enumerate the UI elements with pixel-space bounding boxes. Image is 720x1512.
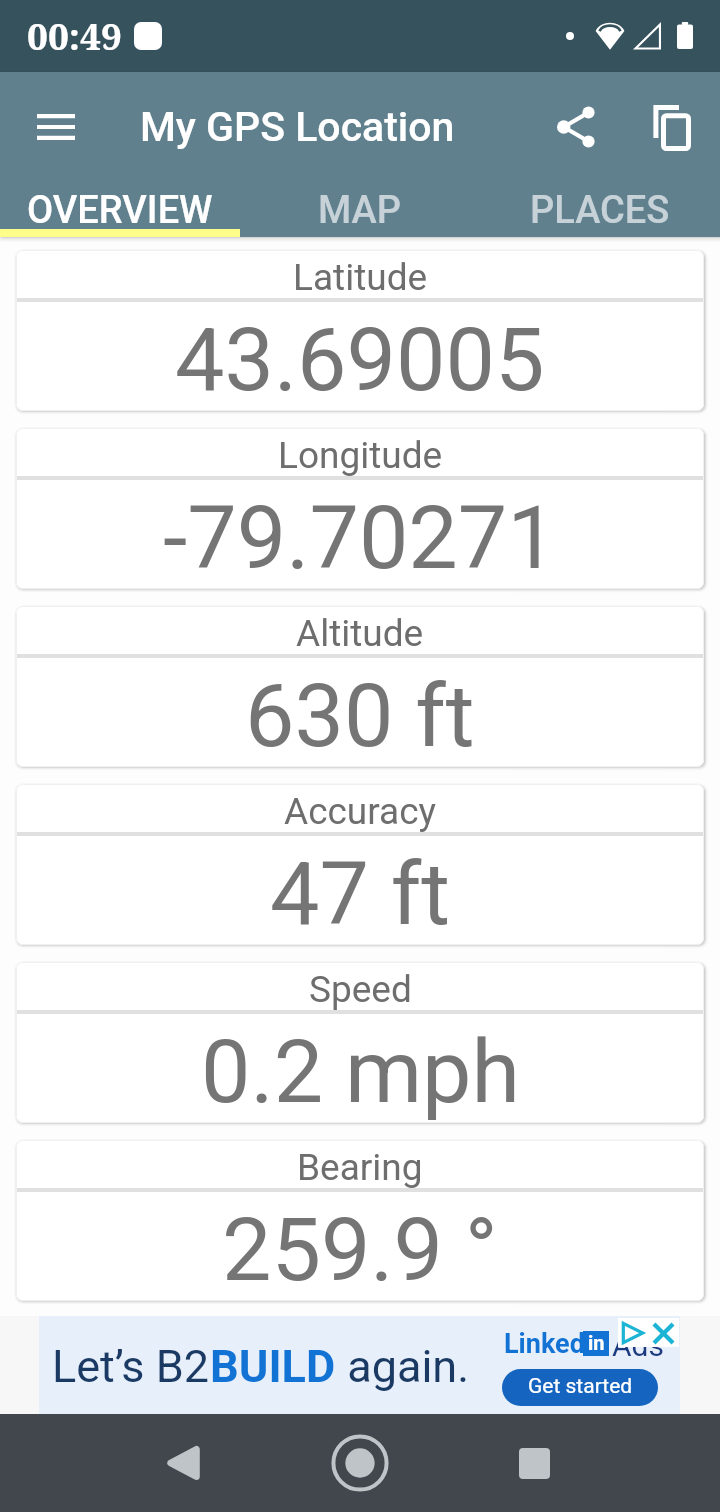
button[interactable]: Copy coordinates <box>635 92 707 164</box>
staticText: 43.69005 <box>175 308 545 411</box>
staticText: MAP <box>318 188 402 233</box>
button[interactable]: Latitude <box>16 250 704 411</box>
staticText: Accuracy <box>284 790 437 833</box>
button[interactable]: Let’s B2 <box>39 1316 680 1414</box>
staticText: in <box>588 1331 605 1354</box>
staticText: Ads <box>612 1328 664 1363</box>
staticText: Linked <box>504 1328 585 1360</box>
button[interactable]: Longitude <box>16 428 704 589</box>
staticText: PLACES <box>530 188 670 233</box>
button[interactable]: Home <box>318 1421 402 1505</box>
button[interactable]: Speed <box>16 962 704 1123</box>
staticText: -79.70271 <box>163 486 557 589</box>
button[interactable]: OVERVIEW <box>0 180 240 237</box>
button[interactable]: Share <box>540 91 612 163</box>
staticText: Get started <box>528 1374 633 1399</box>
staticText: 00:49 <box>27 10 122 60</box>
staticText: My GPS Location <box>140 103 455 151</box>
button[interactable]: Get started <box>502 1369 658 1406</box>
staticText: 630 ft <box>245 664 475 767</box>
button[interactable]: Back <box>140 1421 224 1505</box>
button[interactable]: Accuracy <box>16 784 704 945</box>
staticText: Latitude <box>293 256 428 299</box>
staticText: again. <box>336 1340 470 1393</box>
staticText: Bearing <box>297 1146 423 1189</box>
button[interactable]: Altitude <box>16 606 704 767</box>
button[interactable]: Open navigation menu <box>20 91 92 163</box>
button[interactable]: Recent apps <box>492 1421 576 1505</box>
staticText: Longitude <box>278 434 443 477</box>
staticText: Speed <box>309 968 412 1011</box>
staticText: 0.2 mph <box>201 1020 520 1123</box>
staticText: OVERVIEW <box>27 188 213 233</box>
staticText: 47 ft <box>270 842 451 945</box>
button[interactable]: PLACES <box>480 180 720 237</box>
staticText: 259.9 ° <box>222 1198 498 1301</box>
staticText: Let’s B2 <box>52 1340 210 1393</box>
button[interactable]: MAP <box>240 180 480 237</box>
button[interactable]: Bearing <box>16 1140 704 1301</box>
staticText: Altitude <box>296 612 424 655</box>
staticText: BUILD <box>210 1340 336 1393</box>
